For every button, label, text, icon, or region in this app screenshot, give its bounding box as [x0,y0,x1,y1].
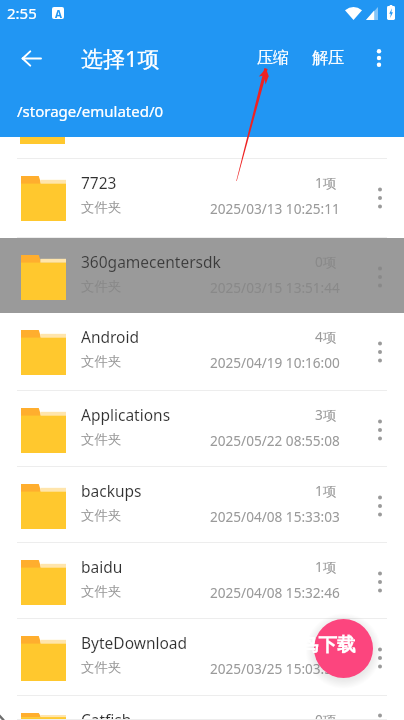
button[interactable]: Android [0,313,404,391]
button[interactable]: 7723 [0,159,404,238]
staticText: 4项 [315,327,337,346]
button[interactable]: Item options [362,175,397,221]
staticText: 0项 [315,710,337,720]
staticText: 3项 [315,405,337,424]
staticText: 文件夹 [81,507,122,524]
staticText: 文件夹 [81,278,122,295]
staticText: 1项 [315,481,337,500]
button[interactable]: More options [358,37,400,79]
staticText: /storage/emulated/0 [17,101,164,121]
staticText: 2025/04/08 15:33:03 [210,507,340,526]
staticText: 1项 [315,633,337,652]
staticText: 0项 [315,252,337,271]
button[interactable]: Add [314,619,373,678]
staticText: 2025/04/08 15:32:46 [210,583,340,602]
staticText: 2025/03/13 10:25:11 [210,199,340,218]
staticText: 2:55 [7,3,37,23]
staticText: 2025/04/19 10:16:00 [210,353,340,372]
button[interactable]: Item options [362,635,397,681]
button[interactable]: Item options [362,712,397,720]
button[interactable]: Item options [362,559,397,605]
button[interactable]: 解压 [305,39,351,77]
staticText: 文件夹 [81,199,122,216]
staticText: 360gamecentersdk [81,251,221,272]
staticText: 文件夹 [81,353,122,370]
staticText: 解压 [312,48,344,68]
staticText: Applications [81,404,171,425]
button[interactable]: Back [10,37,52,79]
staticText: 2025/03/15 13:51:44 [210,278,340,297]
staticText: 鸟下载 [300,633,356,656]
staticText: 2025/05/22 08:55:08 [210,431,340,450]
staticText: 选择1项 [81,43,160,73]
button[interactable]: Applications [0,391,404,467]
staticText: 1项 [315,557,337,576]
button[interactable]: ByteDownload [0,619,404,696]
button[interactable]: Item options [362,407,397,453]
button[interactable]: baidu [0,543,404,619]
staticText: baidu [81,556,123,577]
staticText: 压缩 [257,48,289,68]
staticText: Catfish [81,709,132,720]
button[interactable]: Item options [362,483,397,529]
staticText: 7723 [81,172,117,193]
staticText: backups [81,480,142,501]
button[interactable]: backups [0,467,404,543]
staticText: Android [81,326,140,347]
button[interactable]: 压缩 [250,39,296,77]
staticText: A [55,7,62,19]
staticText: 文件夹 [81,659,122,676]
button[interactable]: Catfish [0,696,404,720]
staticText: 1项 [315,173,337,192]
staticText: 文件夹 [81,583,122,600]
button[interactable]: 360gamecentersdk [0,238,404,313]
staticText: ByteDownload [81,632,188,653]
staticText: 2025/03/25 15:03:51 [210,659,340,678]
button[interactable]: Item options [362,329,397,375]
staticText: 文件夹 [81,431,122,448]
